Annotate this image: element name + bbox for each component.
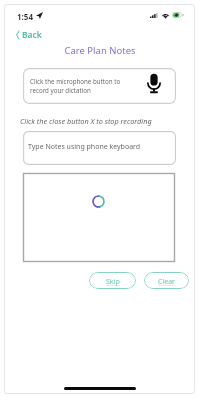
staticText: Care Plan Notes [64, 44, 136, 57]
staticText: Clear [158, 277, 175, 287]
staticText: Type Notes using phone keyboard [28, 142, 141, 152]
staticText: 1:54 [17, 11, 33, 22]
staticText: Click the close button X to stop recordi… [20, 116, 152, 126]
button[interactable]: Back [12, 26, 44, 44]
button[interactable]: Clear [144, 272, 189, 289]
staticText: Back [22, 29, 42, 41]
button[interactable]: Skip [89, 272, 136, 289]
button[interactable]: Record dictation with microphone [143, 70, 165, 96]
staticText: Click the microphone button to record yo… [30, 77, 125, 95]
button[interactable]: Click the microphone button to record yo… [23, 68, 176, 104]
staticText: Skip [106, 277, 120, 287]
button[interactable]: Type Notes using phone keyboard [23, 131, 176, 165]
other: Microphone [147, 73, 161, 94]
